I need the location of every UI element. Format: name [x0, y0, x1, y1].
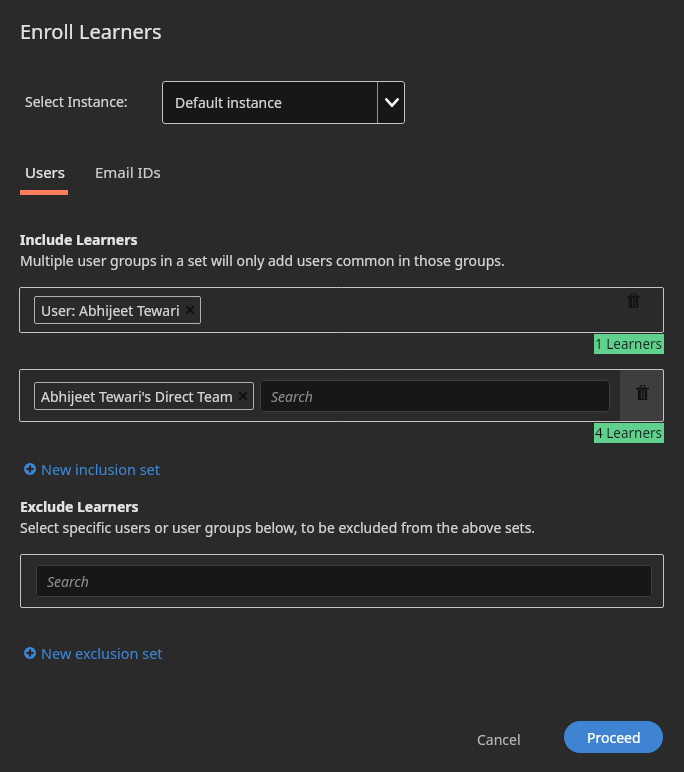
button[interactable]: Proceed [564, 721, 663, 753]
button[interactable]: Search [260, 380, 610, 412]
staticText: Multiple user groups in a set will only … [20, 251, 505, 270]
staticText: New inclusion set [41, 459, 160, 479]
staticText: Users [25, 162, 65, 182]
staticText: Default instance [175, 93, 282, 112]
staticText: Select Instance: [25, 92, 128, 111]
button[interactable]: Abhijeet Tewari's Direct Team [34, 382, 254, 410]
button[interactable]: Delete inclusion set [620, 369, 664, 422]
button[interactable]: Delete inclusion set [622, 289, 644, 311]
staticText: 4 Learners [595, 424, 663, 442]
button[interactable]: User: Abhijeet Tewari [34, 296, 201, 324]
button[interactable]: Cancel [469, 722, 529, 757]
staticText: Select specific users or user groups bel… [20, 518, 536, 537]
staticText: Abhijeet Tewari's Direct Team [41, 387, 233, 406]
staticText: Search [271, 387, 313, 406]
staticText: Include Learners [20, 230, 138, 249]
button[interactable]: Search [36, 565, 652, 597]
staticText: 1 Learners [595, 335, 663, 353]
staticText: New exclusion set [41, 643, 163, 663]
button[interactable]: Default instance [162, 81, 405, 124]
button[interactable]: Open instance dropdown [378, 81, 405, 124]
button[interactable]: New inclusion set [24, 457, 160, 481]
staticText: Cancel [477, 730, 521, 749]
staticText: Email IDs [95, 162, 161, 182]
staticText: Enroll Learners [20, 18, 162, 45]
staticText: Search [47, 572, 89, 591]
staticText: Proceed [587, 728, 641, 747]
button[interactable]: Users [19, 158, 71, 186]
staticText: User: Abhijeet Tewari [41, 301, 180, 320]
staticText: Exclude Learners [20, 497, 139, 516]
button[interactable]: New exclusion set [24, 641, 163, 665]
button[interactable]: Email IDs [89, 158, 167, 186]
